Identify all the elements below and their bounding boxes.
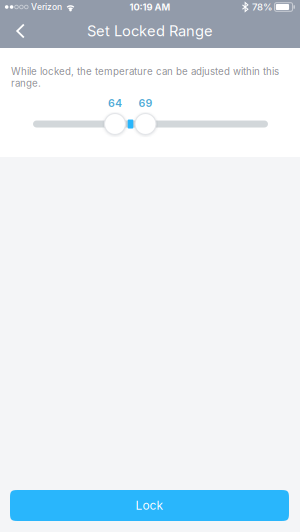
button[interactable]: Back bbox=[0, 14, 41, 48]
button[interactable]: Lock bbox=[10, 490, 289, 521]
staticText: Lock bbox=[135, 498, 163, 513]
staticText: 78% bbox=[252, 1, 273, 13]
staticText: 64 bbox=[108, 96, 122, 109]
staticText: Verizon bbox=[31, 2, 62, 12]
staticText: While locked, the temperature can be adj… bbox=[11, 65, 279, 89]
staticText: Set Locked Range bbox=[87, 22, 213, 40]
staticText: 10:19 AM bbox=[129, 1, 170, 13]
staticText: 69 bbox=[138, 96, 152, 109]
